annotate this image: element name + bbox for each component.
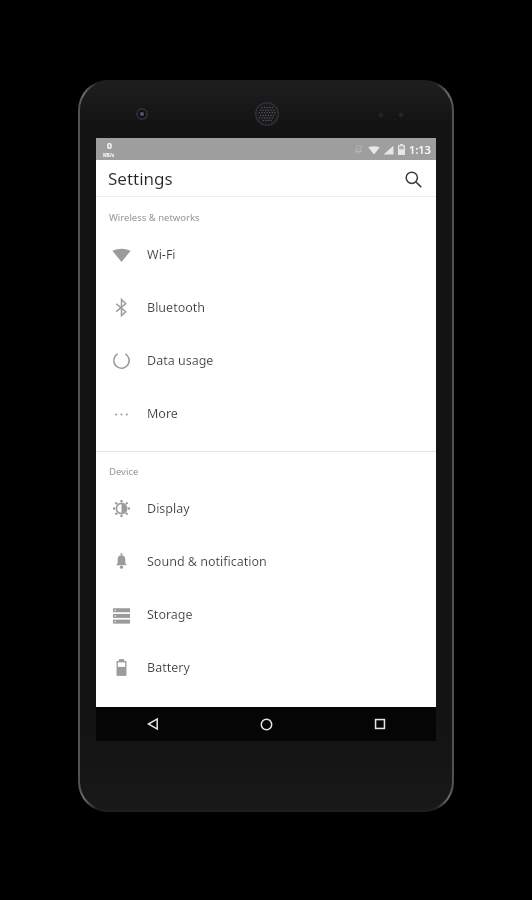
staticText: 1:13 (409, 142, 431, 157)
button[interactable]: Back (96, 707, 210, 741)
button[interactable]: Display (96, 482, 436, 535)
staticText: More (147, 405, 178, 422)
button[interactable]: Search (398, 164, 428, 194)
button[interactable]: Wi-Fi (96, 228, 436, 281)
staticText: Data usage (147, 352, 214, 369)
button[interactable]: Data usage (96, 334, 436, 387)
staticText: Wi-Fi (147, 246, 176, 263)
button[interactable]: Bluetooth (96, 281, 436, 334)
staticText: Battery (147, 659, 190, 676)
staticText: KB/s (103, 152, 115, 159)
staticText: Wireless & networks (109, 211, 200, 224)
staticText: Sound & notification (147, 553, 267, 570)
button[interactable]: Home (210, 707, 323, 741)
button[interactable]: Storage (96, 588, 436, 641)
staticText: 0 (107, 140, 112, 152)
staticText: Settings (108, 167, 173, 190)
staticText: Display (147, 500, 190, 517)
button[interactable]: Battery (96, 641, 436, 694)
button[interactable]: Recent apps (323, 707, 436, 741)
button[interactable]: Sound & notification (96, 535, 436, 588)
staticText: Device (109, 465, 139, 478)
staticText: Bluetooth (147, 299, 206, 316)
staticText: Storage (147, 606, 193, 623)
button[interactable]: More (96, 387, 436, 440)
